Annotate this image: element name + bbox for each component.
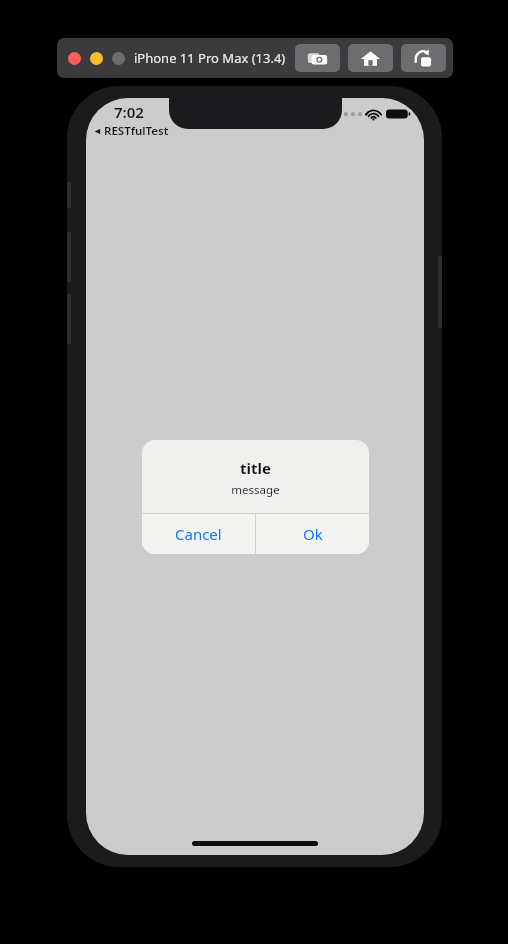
button[interactable]: Home <box>348 44 393 72</box>
button[interactable]: Cancel <box>142 514 255 554</box>
staticText: iPhone 11 Pro Max (13.4) <box>134 49 286 67</box>
button[interactable]: Zoom window <box>112 52 125 65</box>
button[interactable]: Close window <box>68 52 81 65</box>
button[interactable]: Ok <box>256 514 369 554</box>
staticText: message <box>231 482 280 498</box>
staticText: 7:02 <box>114 102 144 122</box>
staticText: RESTfulTest <box>104 123 169 139</box>
staticText: title <box>240 458 271 478</box>
button[interactable]: Rotate device <box>401 44 446 72</box>
button[interactable]: Minimize window <box>90 52 103 65</box>
button[interactable]: Take screenshot <box>295 44 340 72</box>
staticText: Ok <box>303 524 323 544</box>
staticText: Cancel <box>175 524 222 544</box>
